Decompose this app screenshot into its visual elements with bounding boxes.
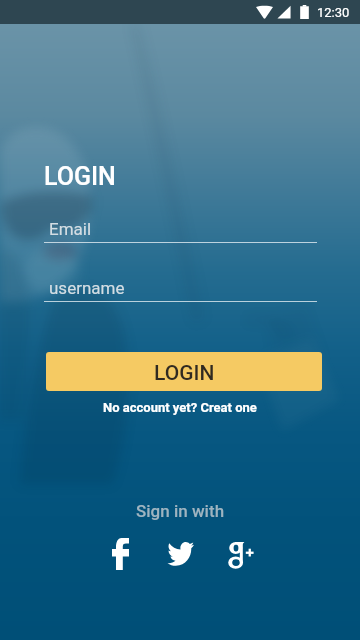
staticText: LOGIN bbox=[154, 361, 215, 386]
button[interactable]: username bbox=[44, 272, 317, 302]
staticText: LOGIN bbox=[44, 162, 116, 191]
staticText: No account yet? Creat one bbox=[103, 400, 257, 415]
button[interactable]: Sign in with Facebook bbox=[98, 532, 142, 576]
button[interactable]: LOGIN bbox=[46, 352, 322, 391]
staticText: Email bbox=[49, 219, 92, 239]
staticText: 12:30 bbox=[317, 5, 350, 20]
button[interactable]: Email bbox=[44, 213, 317, 243]
button[interactable]: Sign in with Twitter bbox=[158, 532, 202, 576]
button[interactable]: No account yet? Creat one bbox=[70, 400, 290, 415]
staticText: Sign in with bbox=[136, 501, 225, 521]
button[interactable]: Sign in with Google Plus bbox=[218, 532, 262, 576]
staticText: username bbox=[49, 278, 125, 298]
